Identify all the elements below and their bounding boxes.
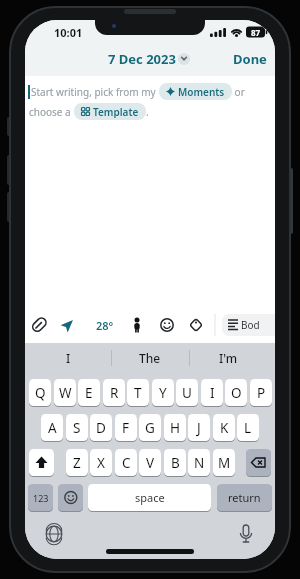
button[interactable]: V xyxy=(139,449,161,476)
staticText: S xyxy=(73,419,81,437)
button[interactable]: C xyxy=(115,449,137,476)
staticText: W xyxy=(59,384,72,402)
button[interactable]: F xyxy=(115,414,137,441)
staticText: T xyxy=(134,384,142,402)
button[interactable]: W xyxy=(54,379,76,406)
button[interactable]: S xyxy=(66,414,88,441)
button[interactable]: Q xyxy=(29,379,51,406)
staticText: or xyxy=(232,85,245,99)
staticText: B xyxy=(171,454,180,472)
button[interactable]: K xyxy=(213,414,235,441)
staticText: E xyxy=(85,384,93,402)
button[interactable]: 28° xyxy=(91,316,119,334)
button[interactable]: J xyxy=(188,414,210,441)
button[interactable]: 7 Dec 2023 xyxy=(101,50,183,68)
staticText: K xyxy=(220,419,229,437)
button[interactable]: B xyxy=(164,449,186,476)
staticText: M xyxy=(218,454,231,472)
staticText: R xyxy=(110,384,119,402)
button[interactable] xyxy=(222,314,275,336)
staticText: 7 Dec 2023 xyxy=(108,50,176,68)
button[interactable]: I'm xyxy=(195,349,261,367)
button[interactable]: 123 xyxy=(28,484,53,511)
staticText: . xyxy=(146,105,149,119)
staticText: I xyxy=(66,350,71,366)
button[interactable] xyxy=(29,449,54,476)
staticText: I xyxy=(210,384,215,402)
staticText: Z xyxy=(73,454,81,472)
staticText: Start writing, pick from my xyxy=(31,85,159,99)
button[interactable]: T xyxy=(127,379,149,406)
staticText: O xyxy=(231,384,242,402)
staticText: space xyxy=(135,490,165,505)
button[interactable]: U xyxy=(176,379,198,406)
staticText: C xyxy=(122,454,131,472)
staticText: F xyxy=(122,419,130,437)
staticText: U xyxy=(182,384,192,402)
staticText: Bod xyxy=(241,318,260,332)
button[interactable]: N xyxy=(188,449,210,476)
staticText: Done xyxy=(233,50,267,68)
staticText: N xyxy=(194,454,205,472)
button[interactable]: R xyxy=(103,379,125,406)
button[interactable]: Done xyxy=(230,50,270,68)
staticText: Template xyxy=(93,105,139,118)
button[interactable]: Template xyxy=(74,103,146,120)
staticText: choose a xyxy=(29,105,74,119)
staticText: A xyxy=(48,419,57,437)
staticText: 10:01 xyxy=(54,25,83,40)
staticText: 123 xyxy=(33,492,49,504)
button[interactable]: M xyxy=(213,449,235,476)
staticText: Y xyxy=(159,384,167,402)
staticText: 87 xyxy=(251,27,261,38)
button[interactable]: Y xyxy=(152,379,174,406)
button[interactable]: G xyxy=(139,414,161,441)
staticText: The xyxy=(139,350,161,366)
button[interactable]: H xyxy=(164,414,186,441)
button[interactable]: D xyxy=(90,414,112,441)
button[interactable]: space xyxy=(88,484,211,511)
staticText: V xyxy=(146,454,155,472)
button[interactable]: O xyxy=(225,379,247,406)
staticText: J xyxy=(197,419,201,437)
button[interactable]: Moments xyxy=(159,83,232,100)
staticText: P xyxy=(257,384,266,402)
button[interactable]: I xyxy=(201,379,223,406)
staticText: D xyxy=(96,419,106,437)
button[interactable]: P xyxy=(250,379,272,406)
button[interactable]: E xyxy=(78,379,100,406)
button[interactable] xyxy=(246,449,271,476)
staticText: 28° xyxy=(96,318,114,333)
button[interactable] xyxy=(58,484,83,511)
staticText: I'm xyxy=(219,350,238,366)
staticText: L xyxy=(244,419,252,437)
staticText: X xyxy=(97,454,105,472)
button[interactable]: X xyxy=(90,449,112,476)
button[interactable]: return xyxy=(217,484,272,511)
button[interactable]: A xyxy=(41,414,63,441)
button[interactable]: I xyxy=(35,349,101,367)
staticText: Moments xyxy=(178,85,225,98)
button[interactable] xyxy=(178,53,190,65)
staticText: Q xyxy=(35,384,46,402)
staticText: G xyxy=(145,419,155,437)
staticText: return xyxy=(228,490,261,505)
staticText: H xyxy=(170,419,181,437)
button[interactable]: L xyxy=(237,414,259,441)
button[interactable]: The xyxy=(117,349,183,367)
button[interactable]: Z xyxy=(66,449,88,476)
